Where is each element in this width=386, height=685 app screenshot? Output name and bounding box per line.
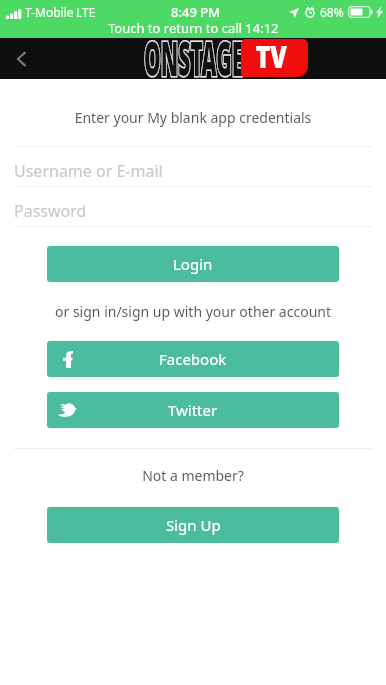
staticText: LTE	[76, 4, 96, 20]
staticText: Login	[173, 254, 213, 274]
button[interactable]: Facebook	[47, 341, 339, 377]
staticText: Twitter	[168, 400, 218, 420]
staticText: Password	[14, 200, 87, 222]
staticText: Not a member?	[0, 466, 386, 485]
staticText: TV	[256, 39, 287, 74]
staticText: Enter your My blank app credentials	[0, 108, 386, 127]
staticText: ONSTAGE	[144, 26, 244, 90]
button[interactable]: Twitter	[47, 392, 339, 428]
staticText: or sign in/sign up with your other accou…	[0, 302, 386, 321]
staticText: Username or E-mail	[14, 160, 163, 182]
staticText: T-Mobile	[25, 4, 74, 20]
button[interactable]: Login	[47, 246, 339, 282]
staticText: Facebook	[159, 349, 227, 369]
button[interactable]: Back	[4, 41, 40, 77]
staticText: 68%	[320, 4, 344, 20]
staticText: 8:49 PM	[171, 3, 221, 21]
staticText: Touch to return to call 14:12	[108, 19, 279, 37]
button[interactable]: Sign Up	[47, 507, 339, 543]
staticText: Sign Up	[166, 515, 221, 535]
staticText: ONSTAGE	[144, 26, 244, 90]
